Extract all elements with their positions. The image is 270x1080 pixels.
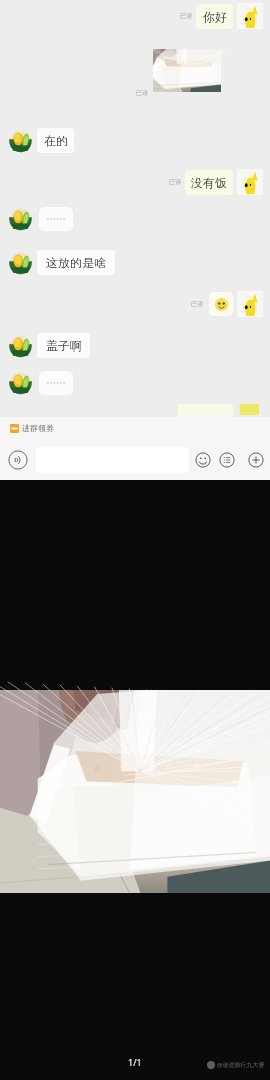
button[interactable]: Emoji [195, 452, 211, 468]
button[interactable]: 盖子啊 [37, 333, 90, 358]
staticText: 这放的是啥 [46, 255, 106, 270]
staticText: 已读 [180, 12, 192, 20]
staticText: 你好 [203, 9, 227, 24]
button[interactable]: 进群领券 [10, 423, 54, 433]
staticText: 盖子啊 [46, 338, 82, 353]
button[interactable] [209, 292, 233, 316]
button[interactable]: 在的 [37, 128, 74, 153]
button[interactable] [39, 371, 73, 395]
button[interactable]: 没有饭 [185, 170, 233, 195]
staticText: 在的 [44, 133, 68, 148]
staticText: @迷途旅行九大赛 [217, 1061, 265, 1069]
button[interactable]: Shortcuts [219, 452, 235, 468]
button[interactable]: Voice message [8, 450, 28, 470]
staticText: 已读 [169, 178, 181, 186]
staticText: 已读 [136, 89, 148, 97]
staticText: 没有饭 [191, 175, 227, 190]
button[interactable]: 你好 [196, 4, 233, 29]
staticText: 1/1 [128, 1056, 142, 1068]
button[interactable]: Add [248, 452, 264, 468]
button[interactable] [39, 207, 73, 231]
staticText: 已读 [191, 300, 203, 308]
button[interactable]: 这放的是啥 [37, 250, 115, 275]
button[interactable] [153, 49, 233, 96]
staticText: 进群领券 [22, 423, 54, 433]
